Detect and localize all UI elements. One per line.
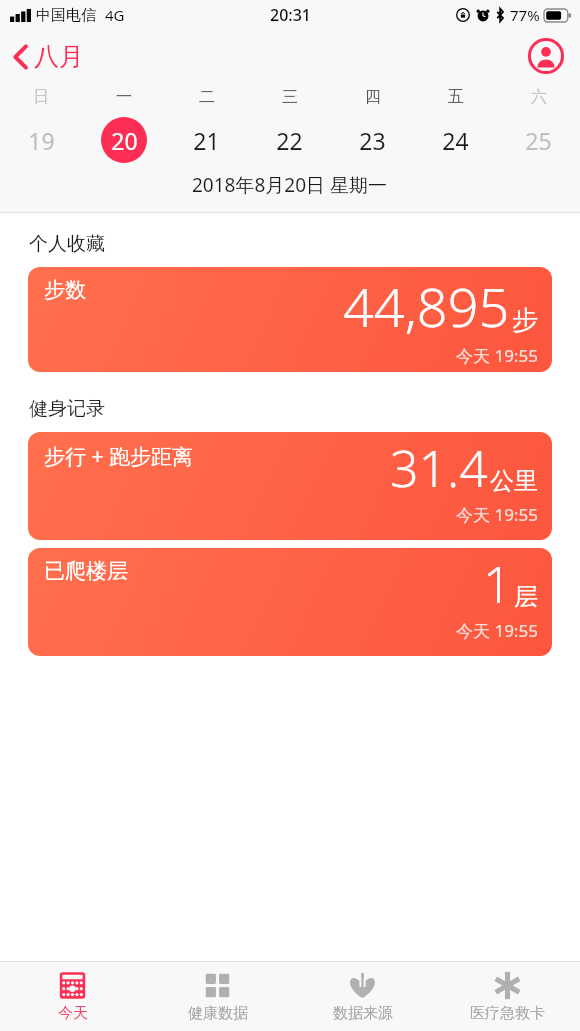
- button[interactable]: 20: [82, 112, 165, 168]
- button[interactable]: 23: [331, 112, 414, 168]
- button[interactable]: 步数: [28, 267, 552, 372]
- staticText: 六: [531, 87, 547, 107]
- button[interactable]: 21: [165, 112, 248, 168]
- staticText: 今天 19:55: [456, 344, 538, 367]
- button[interactable]: 今天: [0, 962, 145, 1031]
- staticText: 步行 + 跑步距离: [44, 442, 193, 471]
- button[interactable]: 医疗急救卡: [435, 962, 580, 1031]
- staticText: 20: [111, 125, 138, 156]
- staticText: 医疗急救卡: [470, 1004, 545, 1023]
- staticText: 四: [365, 87, 381, 107]
- button[interactable]: 25: [497, 112, 580, 168]
- button[interactable]: 八月: [0, 35, 96, 78]
- staticText: 44,895: [343, 269, 510, 343]
- staticText: 步: [512, 304, 538, 337]
- staticText: 24: [442, 125, 469, 156]
- staticText: 25: [525, 125, 552, 156]
- staticText: 77%: [510, 5, 540, 25]
- staticText: 20:31: [270, 4, 311, 26]
- staticText: 22: [276, 125, 303, 156]
- staticText: 一: [116, 87, 132, 107]
- staticText: 个人收藏: [29, 232, 105, 256]
- button[interactable]: 步行 + 跑步距离: [28, 432, 552, 540]
- staticText: 步数: [44, 277, 86, 303]
- staticText: 层: [514, 582, 538, 612]
- staticText: 今天: [58, 1004, 88, 1023]
- staticText: 健康数据: [188, 1004, 248, 1023]
- staticText: 2018年8月20日 星期一: [192, 172, 388, 198]
- staticText: 三: [282, 87, 298, 107]
- button[interactable]: 22: [248, 112, 331, 168]
- staticText: 公里: [490, 466, 538, 496]
- staticText: 已爬楼层: [44, 558, 128, 584]
- button[interactable]: 数据来源: [290, 962, 435, 1031]
- button[interactable]: 24: [414, 112, 497, 168]
- staticText: 今天 19:55: [456, 619, 538, 642]
- staticText: 八月: [34, 41, 84, 72]
- staticText: 23: [359, 125, 386, 156]
- staticText: 健身记录: [29, 397, 105, 421]
- button[interactable]: 已爬楼层: [28, 548, 552, 656]
- button[interactable]: 健康数据: [145, 962, 290, 1031]
- staticText: 二: [199, 87, 215, 107]
- staticText: 日: [33, 87, 49, 107]
- staticText: 4G: [105, 5, 125, 25]
- staticText: 五: [448, 87, 464, 107]
- staticText: 今天 19:55: [456, 503, 538, 526]
- button[interactable]: 个人资料: [526, 36, 566, 76]
- staticText: 中国电信: [36, 6, 96, 25]
- staticText: 21: [193, 125, 220, 156]
- staticText: 31.4: [390, 434, 488, 502]
- staticText: 数据来源: [333, 1004, 393, 1023]
- button[interactable]: 19: [0, 112, 82, 168]
- staticText: 19: [28, 125, 55, 156]
- staticText: 1: [483, 550, 512, 618]
